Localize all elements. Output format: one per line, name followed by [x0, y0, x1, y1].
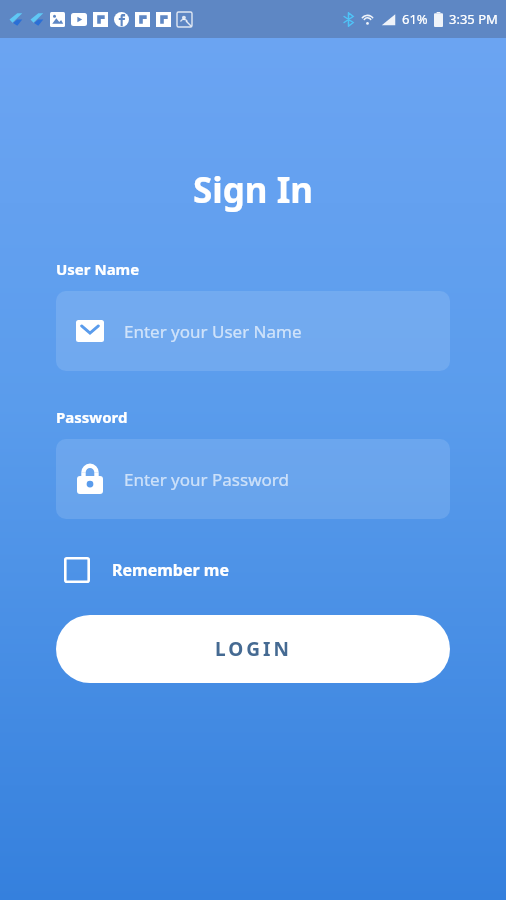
staticText: 61%: [402, 10, 428, 28]
button[interactable]: Remember me: [64, 549, 229, 591]
staticText: Sign In: [0, 166, 506, 214]
button[interactable]: Enter your Password: [56, 439, 450, 519]
staticText: Enter your User Name: [124, 320, 302, 343]
staticText: Password: [56, 407, 128, 427]
button[interactable]: LOGIN: [56, 615, 450, 683]
staticText: Remember me: [112, 559, 229, 581]
button[interactable]: Enter your User Name: [56, 291, 450, 371]
staticText: 3:35 PM: [449, 10, 498, 28]
staticText: LOGIN: [215, 636, 292, 662]
staticText: Enter your Password: [124, 468, 289, 491]
staticText: User Name: [56, 259, 140, 279]
